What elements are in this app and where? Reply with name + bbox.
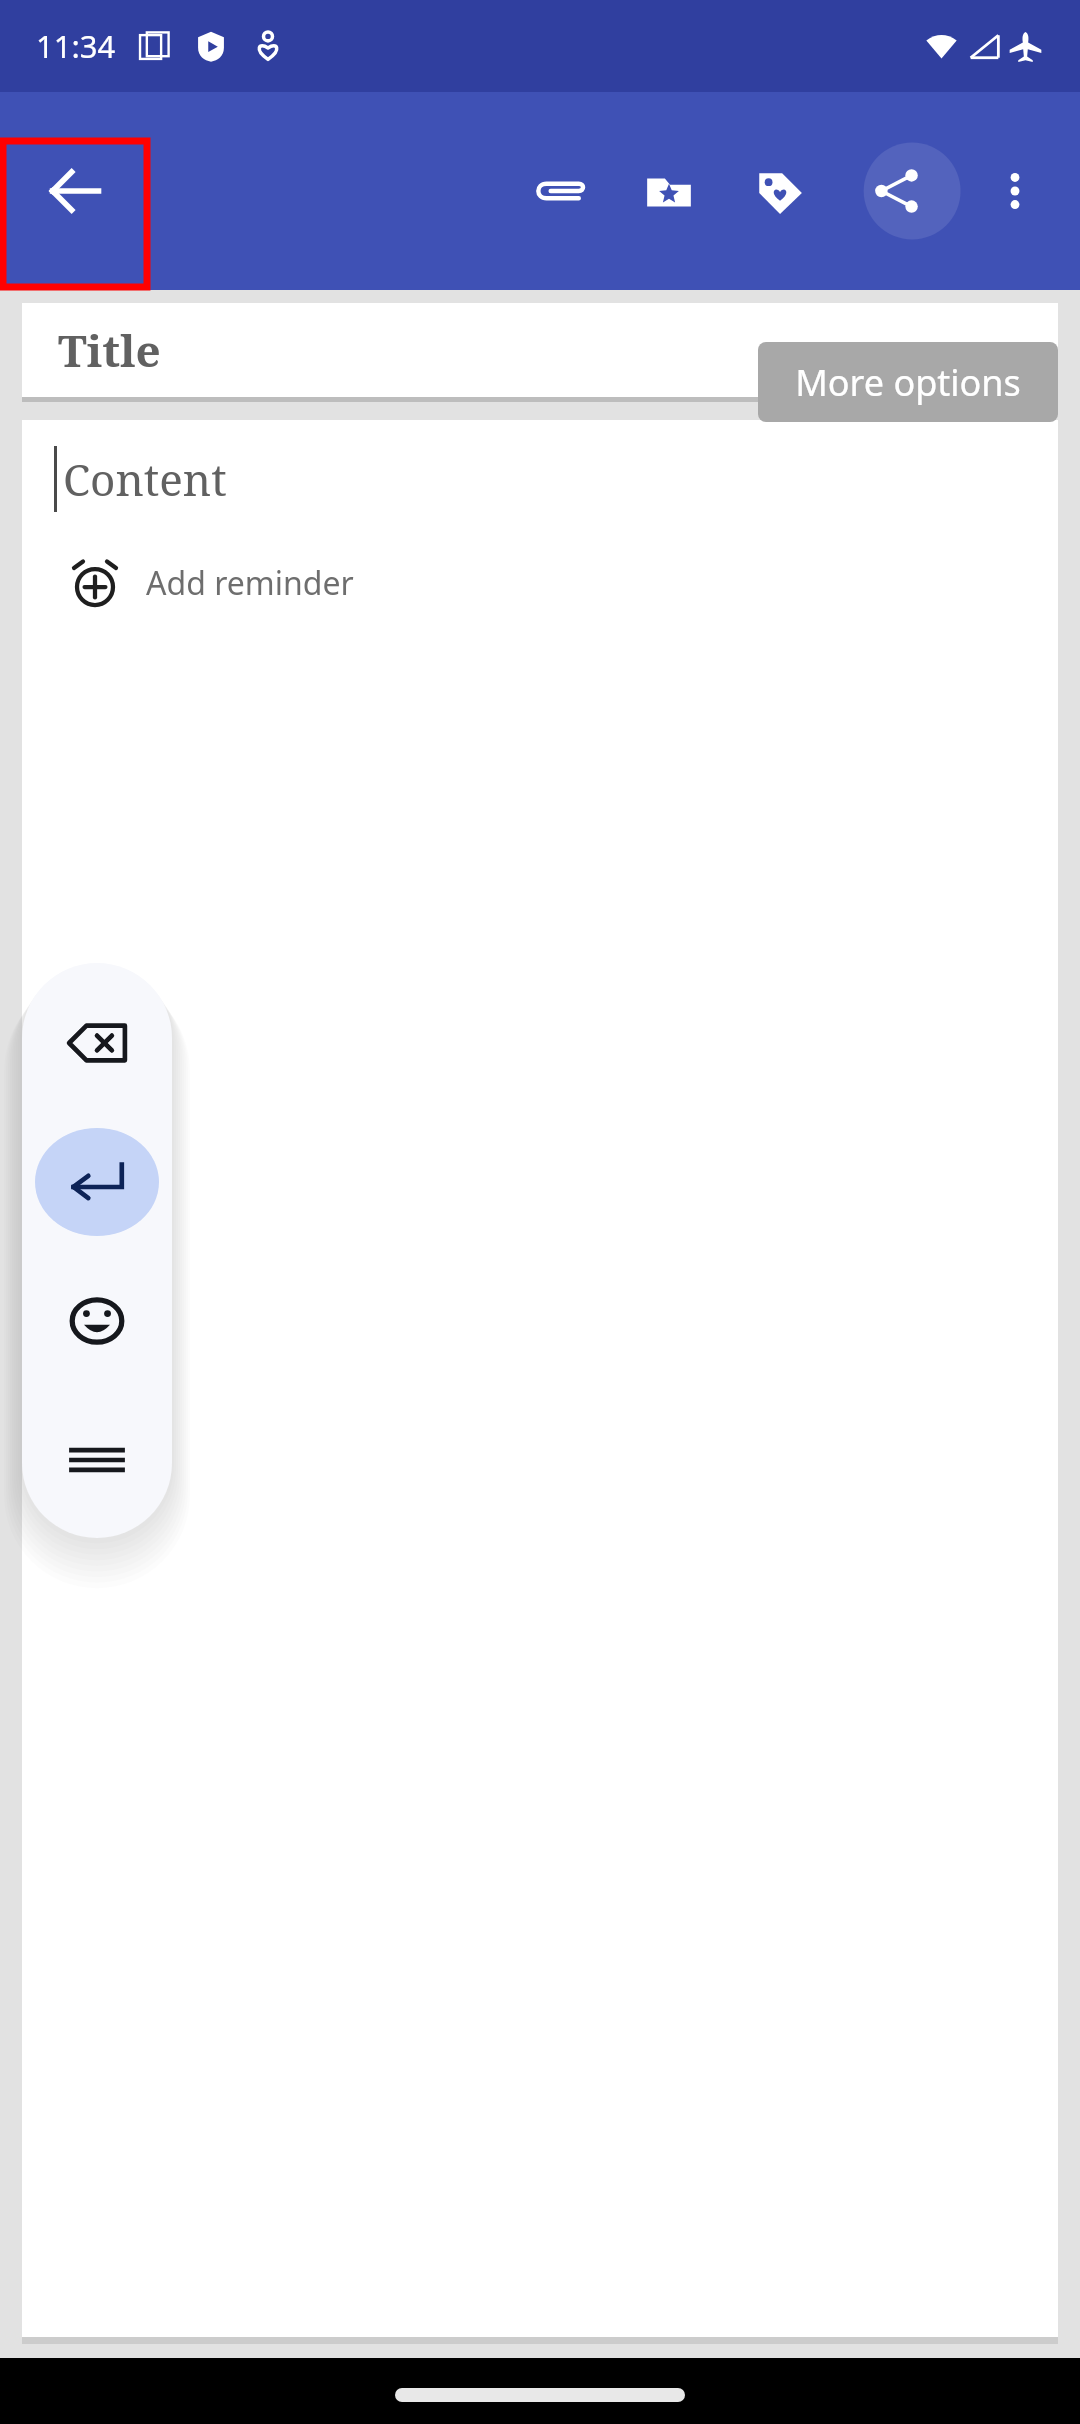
button[interactable]: Navigate up <box>0 116 150 266</box>
staticText: Add reminder <box>146 561 354 605</box>
button[interactable]: Add reminder <box>70 540 354 626</box>
button[interactable]: Title <box>22 303 1058 397</box>
staticText: Title <box>58 320 161 380</box>
button[interactable]: Attach file <box>504 136 614 246</box>
staticText: Content <box>63 449 227 509</box>
button[interactable]: Backspace <box>22 973 172 1112</box>
button[interactable]: Add to folder <box>614 136 724 246</box>
button[interactable]: More options <box>960 136 1070 246</box>
button[interactable]: Content <box>22 420 1058 2337</box>
staticText: More options <box>795 358 1021 407</box>
staticText: 11:34 <box>36 25 116 67</box>
button[interactable]: Enter <box>22 1112 172 1251</box>
button[interactable]: Keyboard settings <box>22 1390 172 1529</box>
button[interactable]: Labels <box>724 136 834 246</box>
button[interactable]: Emoji <box>22 1251 172 1390</box>
button[interactable]: Share <box>842 136 952 246</box>
